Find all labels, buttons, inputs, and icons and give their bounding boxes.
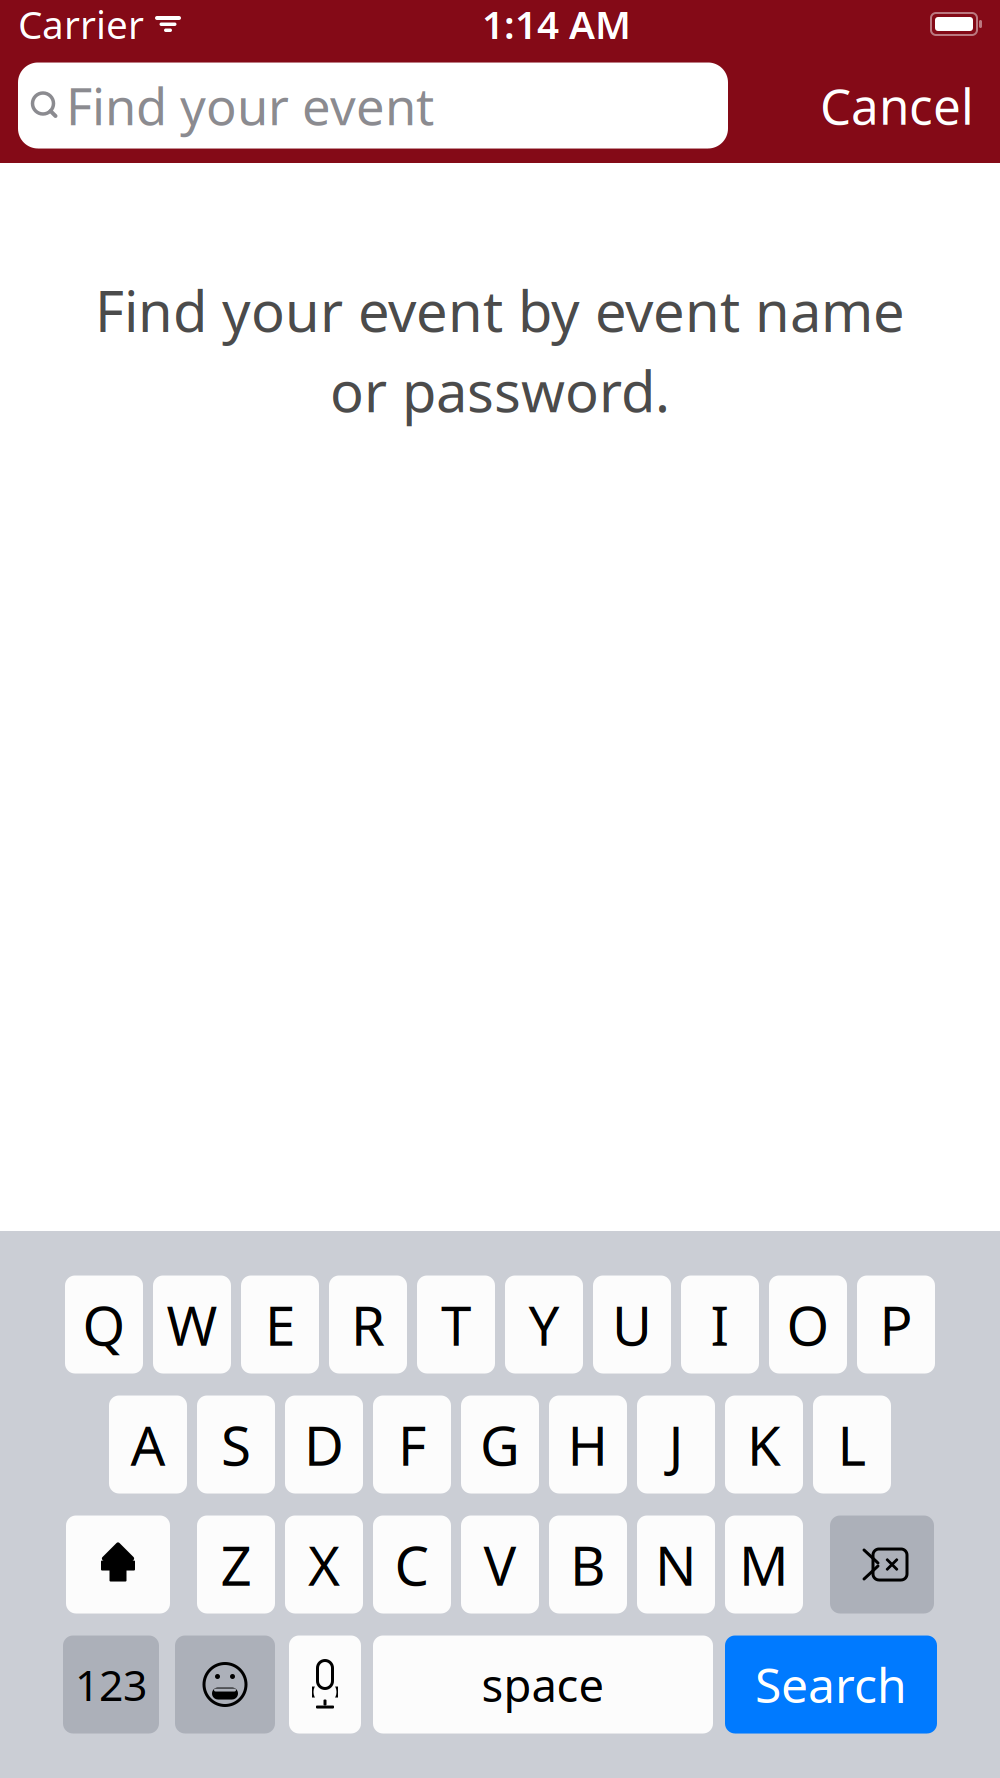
button[interactable]: Dictation	[289, 1635, 361, 1733]
staticText: 123	[75, 1656, 147, 1713]
staticText: or password.	[330, 353, 670, 428]
button[interactable]: L	[813, 1395, 891, 1493]
staticText: C	[394, 1528, 429, 1601]
button[interactable]: Find your event	[18, 62, 728, 148]
button[interactable]: N	[637, 1515, 715, 1613]
button[interactable]: V	[461, 1515, 539, 1613]
button[interactable]: E	[241, 1275, 319, 1373]
button[interactable]: M	[725, 1515, 803, 1613]
button[interactable]: Emoji	[175, 1635, 275, 1733]
staticText: K	[747, 1408, 781, 1481]
button[interactable]: G	[461, 1395, 539, 1493]
button[interactable]: Search	[725, 1635, 937, 1733]
button[interactable]: U	[593, 1275, 671, 1373]
staticText: Z	[220, 1528, 251, 1601]
button[interactable]: Cancel	[812, 59, 982, 152]
button[interactable]: R	[329, 1275, 407, 1373]
button[interactable]: F	[373, 1395, 451, 1493]
button[interactable]: W	[153, 1275, 231, 1373]
staticText: space	[481, 1654, 604, 1715]
staticText: M	[739, 1528, 789, 1601]
staticText: H	[567, 1408, 608, 1481]
staticText: V	[483, 1528, 516, 1601]
staticText: Cancel	[820, 73, 974, 138]
button[interactable]: B	[549, 1515, 627, 1613]
staticText: Find your event by event name	[95, 273, 905, 347]
staticText: P	[879, 1288, 912, 1361]
button[interactable]: I	[681, 1275, 759, 1373]
staticText: O	[786, 1288, 829, 1361]
staticText: A	[130, 1408, 165, 1481]
staticText: G	[480, 1408, 520, 1481]
button[interactable]: P	[857, 1275, 935, 1373]
button[interactable]: A	[109, 1395, 187, 1493]
button[interactable]: D	[285, 1395, 363, 1493]
staticText: Find your event	[66, 72, 434, 139]
button[interactable]: 123	[63, 1635, 159, 1733]
staticText: I	[710, 1288, 729, 1361]
staticText: T	[441, 1288, 471, 1361]
staticText: Carrier	[18, 0, 144, 50]
button[interactable]: Y	[505, 1275, 583, 1373]
button[interactable]: H	[549, 1395, 627, 1493]
button[interactable]: X	[285, 1515, 363, 1613]
staticText: Search	[755, 1653, 907, 1716]
button[interactable]: Q	[65, 1275, 143, 1373]
staticText: Y	[528, 1288, 559, 1361]
staticText: J	[668, 1408, 683, 1481]
staticText: B	[570, 1528, 606, 1601]
button[interactable]: O	[769, 1275, 847, 1373]
staticText: U	[612, 1288, 652, 1361]
staticText: X	[308, 1528, 340, 1601]
staticText: D	[304, 1408, 344, 1481]
staticText: L	[837, 1408, 866, 1481]
staticText: S	[221, 1408, 251, 1481]
button[interactable]: T	[417, 1275, 495, 1373]
button[interactable]: C	[373, 1515, 451, 1613]
staticText: E	[265, 1288, 295, 1361]
staticText: N	[655, 1528, 697, 1601]
button[interactable]: space	[373, 1635, 713, 1733]
button[interactable]: K	[725, 1395, 803, 1493]
button[interactable]: S	[197, 1395, 275, 1493]
staticText: W	[166, 1288, 217, 1361]
button[interactable]: J	[637, 1395, 715, 1493]
button[interactable]: Z	[197, 1515, 275, 1613]
staticText: R	[351, 1288, 385, 1361]
staticText: F	[398, 1408, 426, 1481]
staticText: Q	[82, 1288, 125, 1361]
staticText: 1:14 AM	[482, 0, 631, 50]
button[interactable]: Delete	[830, 1515, 934, 1613]
button[interactable]: Shift	[66, 1515, 170, 1613]
